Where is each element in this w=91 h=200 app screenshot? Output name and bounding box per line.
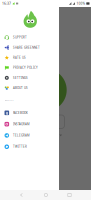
button[interactable]: RATE US <box>0 53 59 63</box>
staticText: SHARE GREENNET <box>13 46 40 49</box>
staticText: 16:37 <box>2 1 11 6</box>
staticText: TWITTER <box>13 145 27 149</box>
button[interactable]: PRIVACY POLICY <box>0 63 59 73</box>
button[interactable]: INSTAGRAM <box>0 118 59 130</box>
staticText: FACEBOOK <box>13 111 28 115</box>
staticText: SUPPORT <box>13 35 27 39</box>
button[interactable]: ABOUT US <box>0 83 59 93</box>
staticText: 100% <box>76 1 85 6</box>
button[interactable]: TWITTER <box>0 141 59 152</box>
staticText: PRIVACY POLICY <box>13 66 38 70</box>
staticText: RATE US <box>13 56 26 60</box>
button[interactable]: Recents <box>68 193 71 197</box>
staticText: SOCIAL <box>4 98 13 102</box>
button[interactable]: SHARE GREENNET <box>0 42 59 53</box>
staticText: ABOUT US <box>13 86 28 90</box>
staticText: SETTINGS <box>13 76 28 80</box>
button[interactable]: SUPPORT <box>0 32 59 42</box>
button[interactable]: Home <box>44 193 48 197</box>
staticText: TELEGRAM <box>13 133 30 137</box>
staticText: INSTAGRAM <box>13 122 30 126</box>
button[interactable]: Back <box>20 193 24 197</box>
button[interactable]: FACEBOOK <box>0 107 59 118</box>
button[interactable]: SETTINGS <box>0 73 59 83</box>
button[interactable]: TELEGRAM <box>0 130 59 141</box>
